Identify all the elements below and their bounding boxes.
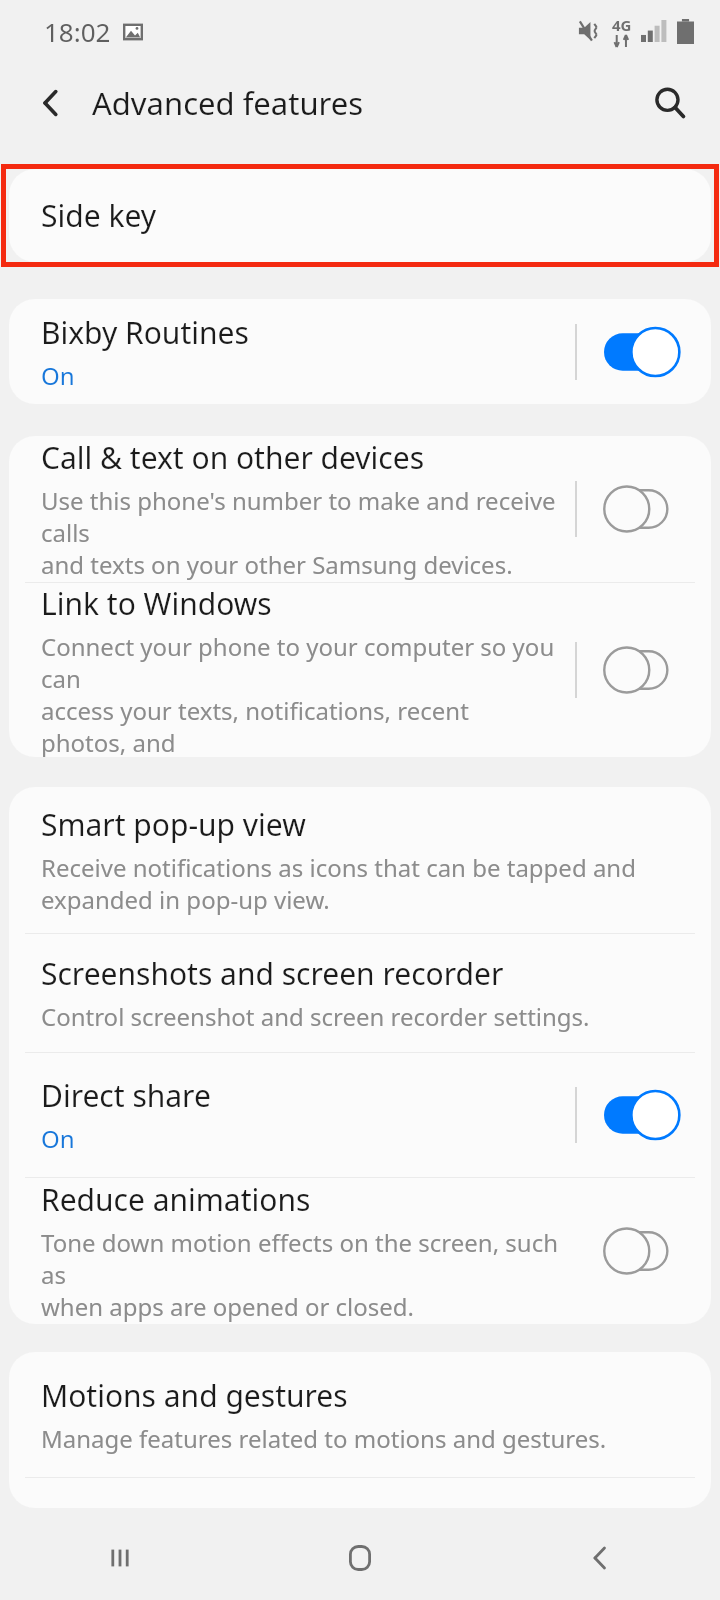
staticText: Side key <box>41 195 157 236</box>
staticText: Link to Windows <box>41 583 272 624</box>
button[interactable]: Call & text on other devices off <box>599 476 681 542</box>
button[interactable]: Search <box>642 75 698 131</box>
staticText: Tone down motion effects on the screen, … <box>41 1226 559 1323</box>
button[interactable]: Home <box>240 1516 480 1600</box>
staticText: Advanced features <box>92 82 364 124</box>
staticText: Connect your phone to your computer so y… <box>41 630 559 757</box>
button[interactable]: Recents <box>0 1516 240 1600</box>
staticText: Screenshots and screen recorder <box>41 953 504 994</box>
button[interactable]: Side key <box>9 169 711 262</box>
staticText: Control screenshot and screen recorder s… <box>41 1000 590 1033</box>
staticText: Reduce animations <box>41 1179 311 1220</box>
button[interactable]: Bixby Routines on <box>599 319 681 385</box>
button[interactable]: Reduce animations off <box>599 1218 681 1284</box>
button[interactable]: Back <box>24 76 78 130</box>
staticText: On <box>41 359 75 392</box>
button[interactable]: Bixby Routines <box>9 299 711 404</box>
button[interactable]: Reduce animations <box>9 1178 711 1324</box>
staticText: Smart pop-up view <box>41 804 306 845</box>
button[interactable]: Direct share <box>9 1053 711 1177</box>
button[interactable]: Screenshots and screen recorder <box>9 934 711 1052</box>
staticText: Motions and gestures <box>41 1375 348 1416</box>
button[interactable]: Call & text on other devices <box>9 436 711 582</box>
button[interactable]: Smart pop-up view <box>9 787 711 933</box>
staticText: 18:02 <box>44 14 111 49</box>
staticText: Manage features related to motions and g… <box>41 1422 607 1455</box>
button[interactable]: Direct share on <box>599 1082 681 1148</box>
staticText: Receive notifications as icons that can … <box>41 851 636 916</box>
staticText: 4G <box>612 15 632 35</box>
staticText: Use this phone's number to make and rece… <box>41 484 559 581</box>
button[interactable]: Link to Windows <box>9 583 711 757</box>
staticText: Call & text on other devices <box>41 437 425 478</box>
button[interactable]: Back <box>480 1516 720 1600</box>
button[interactable]: Motions and gestures <box>9 1352 711 1477</box>
staticText: On <box>41 1122 75 1155</box>
staticText: Direct share <box>41 1075 211 1116</box>
button[interactable]: Link to Windows off <box>599 637 681 703</box>
staticText: Bixby Routines <box>41 312 249 353</box>
